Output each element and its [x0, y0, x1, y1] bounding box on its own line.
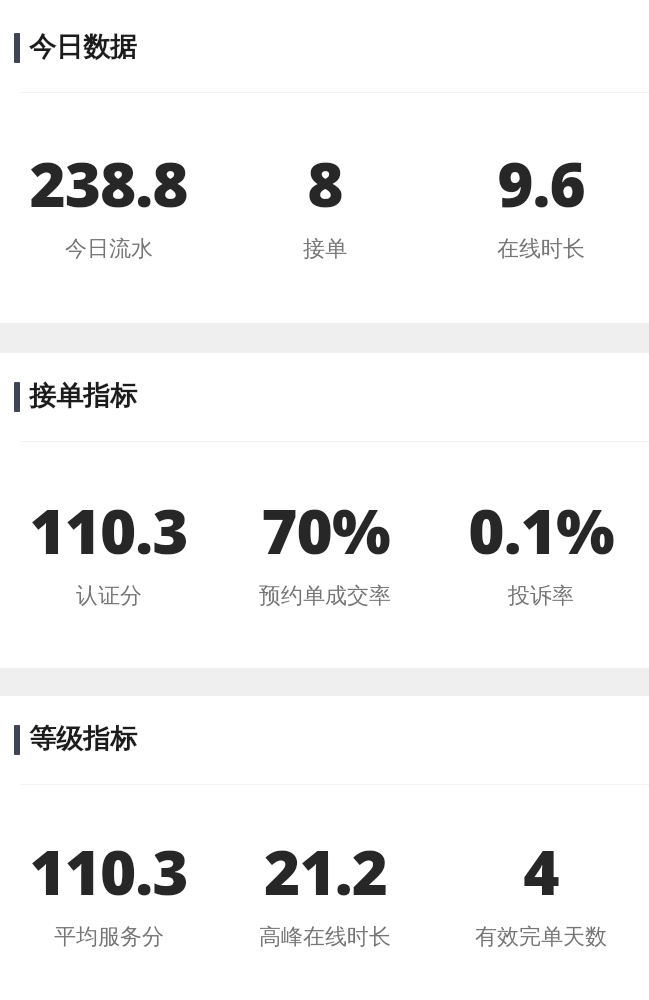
button[interactable]: 等级指标: [0, 710, 649, 770]
staticText: 高峰在线时长: [259, 923, 391, 951]
staticText: 今日数据: [29, 30, 137, 64]
staticText: 0.1%: [468, 488, 614, 572]
staticText: 今日流水: [65, 235, 153, 263]
button[interactable]: 4: [475, 829, 607, 951]
button[interactable]: 110.3: [29, 488, 188, 610]
staticText: 21.2: [264, 829, 387, 913]
button[interactable]: 110.3: [29, 829, 188, 951]
staticText: 预约单成交率: [259, 582, 391, 610]
staticText: 4: [523, 829, 559, 913]
staticText: 238.8: [29, 141, 188, 225]
button[interactable]: 9.6: [497, 141, 585, 263]
staticText: 有效完单天数: [475, 923, 607, 951]
staticText: 110.3: [29, 829, 188, 913]
button[interactable]: 238.8: [29, 141, 188, 263]
staticText: 70%: [261, 488, 390, 572]
staticText: 接单指标: [29, 379, 137, 413]
staticText: 8: [307, 141, 343, 225]
staticText: 投诉率: [508, 582, 574, 610]
button[interactable]: 0.1%: [468, 488, 614, 610]
button[interactable]: 接单指标: [0, 367, 649, 427]
staticText: 在线时长: [497, 235, 585, 263]
staticText: 接单: [303, 235, 347, 263]
button[interactable]: 70%: [259, 488, 391, 610]
button[interactable]: 今日数据: [0, 18, 649, 78]
staticText: 认证分: [76, 582, 142, 610]
button[interactable]: 21.2: [259, 829, 391, 951]
staticText: 110.3: [29, 488, 188, 572]
staticText: 平均服务分: [54, 923, 164, 951]
staticText: 等级指标: [29, 722, 137, 756]
button[interactable]: 8: [303, 141, 347, 263]
staticText: 9.6: [497, 141, 585, 225]
